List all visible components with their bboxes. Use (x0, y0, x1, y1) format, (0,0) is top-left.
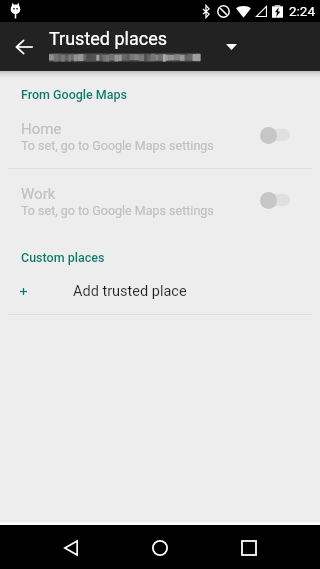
button[interactable]: Toggle (260, 124, 290, 146)
button[interactable]: Navigate up (0, 23, 48, 71)
staticText: From Google Maps (21, 87, 128, 102)
button[interactable]: Recent apps (226, 526, 272, 569)
staticText: 2:24 (289, 3, 316, 19)
staticText: Work (21, 185, 56, 203)
staticText: Custom places (21, 250, 105, 265)
button[interactable]: Home (0, 120, 320, 153)
button[interactable]: Home (137, 526, 183, 569)
staticText: Home (21, 120, 62, 138)
staticText: Add trusted place (73, 283, 187, 300)
staticText: To set, go to Google Maps settings (21, 203, 214, 218)
button[interactable]: Choose account (214, 30, 248, 64)
button[interactable]: Work (0, 185, 320, 218)
staticText: Trusted places (49, 28, 167, 49)
button[interactable]: Back (48, 526, 94, 569)
button[interactable]: Add trusted place (0, 283, 320, 300)
button[interactable]: Toggle (260, 189, 290, 211)
staticText: To set, go to Google Maps settings (21, 138, 214, 153)
